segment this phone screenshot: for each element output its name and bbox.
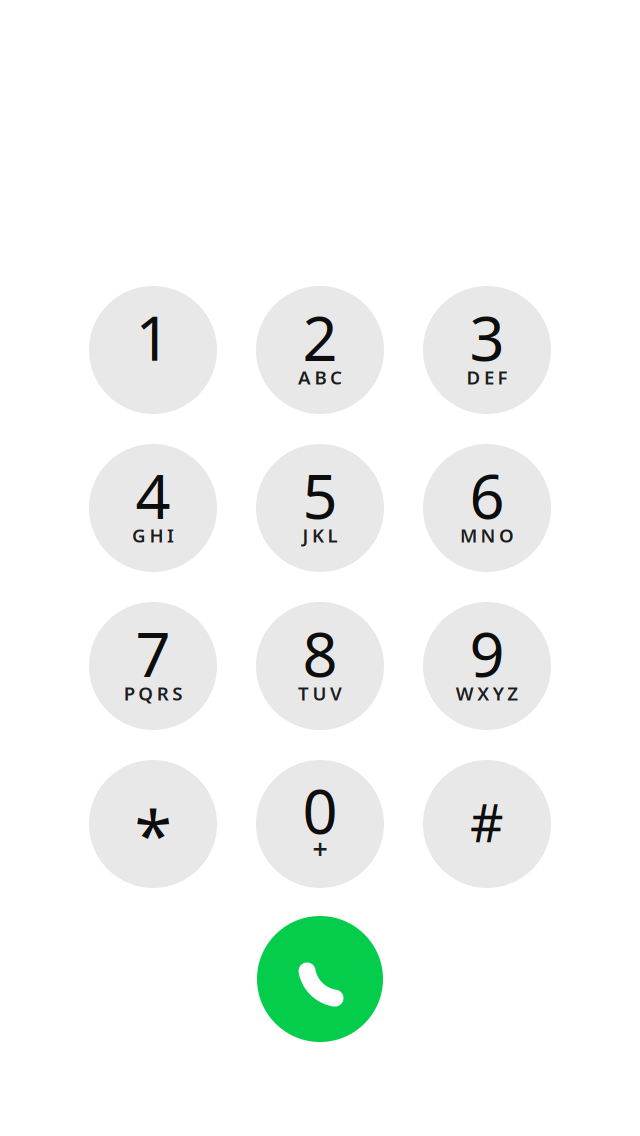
staticText: PQRS: [124, 681, 182, 706]
button[interactable]: 6: [423, 444, 551, 572]
button[interactable]: Call: [257, 916, 383, 1042]
staticText: ABC: [298, 365, 342, 390]
button[interactable]: *: [89, 760, 217, 888]
button[interactable]: #: [423, 760, 551, 888]
staticText: MNO: [460, 523, 514, 548]
staticText: +: [312, 831, 327, 866]
staticText: WXYZ: [456, 681, 518, 706]
staticText: 2: [302, 296, 337, 378]
staticText: 9: [469, 612, 504, 694]
staticText: 0: [302, 770, 337, 851]
button[interactable]: 4: [89, 444, 217, 572]
button[interactable]: 7: [89, 602, 217, 730]
staticText: 8: [302, 612, 337, 694]
staticText: 5: [302, 454, 337, 536]
button[interactable]: 0: [256, 760, 384, 888]
staticText: 1: [135, 296, 170, 378]
staticText: DEF: [466, 365, 507, 390]
button[interactable]: 5: [256, 444, 384, 572]
staticText: 3: [469, 296, 504, 378]
button[interactable]: 2: [256, 286, 384, 414]
staticText: 6: [469, 454, 504, 536]
staticText: GHI: [132, 523, 174, 548]
staticText: 7: [135, 612, 170, 694]
staticText: JKL: [302, 523, 337, 548]
staticText: *: [134, 789, 171, 879]
button[interactable]: 3: [423, 286, 551, 414]
staticText: TUV: [298, 681, 342, 706]
staticText: 4: [135, 454, 170, 536]
button[interactable]: 1: [89, 286, 217, 414]
button[interactable]: 9: [423, 602, 551, 730]
button[interactable]: 8: [256, 602, 384, 730]
staticText: #: [470, 787, 504, 857]
